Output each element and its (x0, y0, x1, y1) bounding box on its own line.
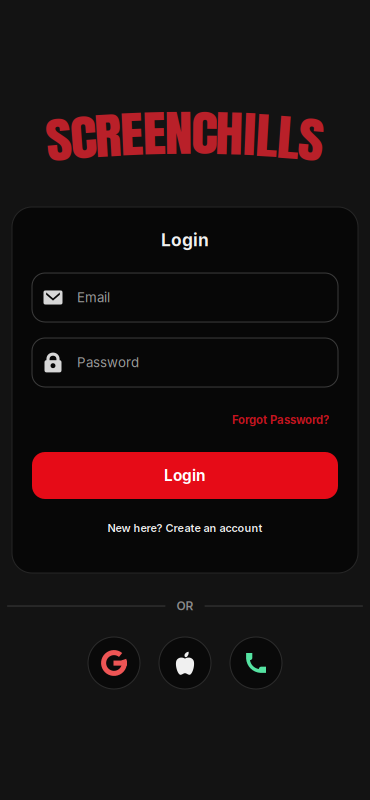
staticText: I (244, 100, 254, 168)
staticText: OR (176, 599, 193, 613)
button[interactable]: New here? Create an account (107, 513, 262, 543)
staticText: R (97, 102, 119, 170)
staticText: E (145, 99, 164, 168)
staticText: H (218, 99, 241, 168)
button[interactable]: Forgot Password? (232, 413, 338, 427)
staticText: C (73, 103, 94, 172)
staticText: Email (77, 289, 110, 305)
staticText: Login (164, 466, 206, 485)
staticText: Login (161, 229, 209, 250)
staticText: L (279, 103, 297, 172)
staticText: S (48, 106, 69, 174)
button[interactable]: Login (32, 452, 338, 499)
staticText: Forgot Password? (232, 413, 329, 427)
button[interactable]: Sign in with phone number (230, 637, 282, 689)
staticText: E (122, 100, 141, 168)
staticText: S (301, 106, 322, 174)
staticText: N (167, 99, 190, 167)
button[interactable]: Sign in with Google (88, 637, 140, 689)
staticText: L (258, 102, 276, 170)
staticText: New here? Create an account (107, 521, 262, 535)
staticText: Password (77, 354, 139, 370)
staticText: C (194, 99, 215, 167)
button[interactable]: Sign in with Apple (159, 637, 211, 689)
